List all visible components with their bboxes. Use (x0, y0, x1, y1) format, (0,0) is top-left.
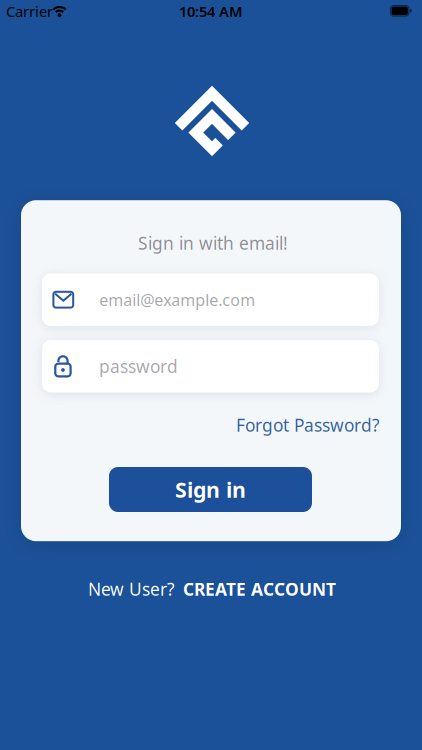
button[interactable]: Sign in (109, 467, 312, 512)
staticText: New User? (88, 577, 175, 600)
button[interactable]: password (42, 340, 379, 392)
staticText: email@example.com (99, 289, 255, 310)
staticText: CREATE ACCOUNT (183, 577, 336, 600)
button[interactable]: email@example.com (42, 273, 379, 326)
staticText: Sign in with email! (138, 231, 288, 254)
staticText: Carrier (6, 2, 53, 21)
button[interactable]: Forgot Password? (220, 413, 380, 436)
staticText: 10:54 AM (179, 2, 243, 21)
button[interactable]: CREATE ACCOUNT (183, 577, 336, 600)
staticText: Forgot Password? (236, 413, 380, 436)
staticText: password (99, 355, 178, 378)
staticText: Sign in (175, 475, 246, 504)
